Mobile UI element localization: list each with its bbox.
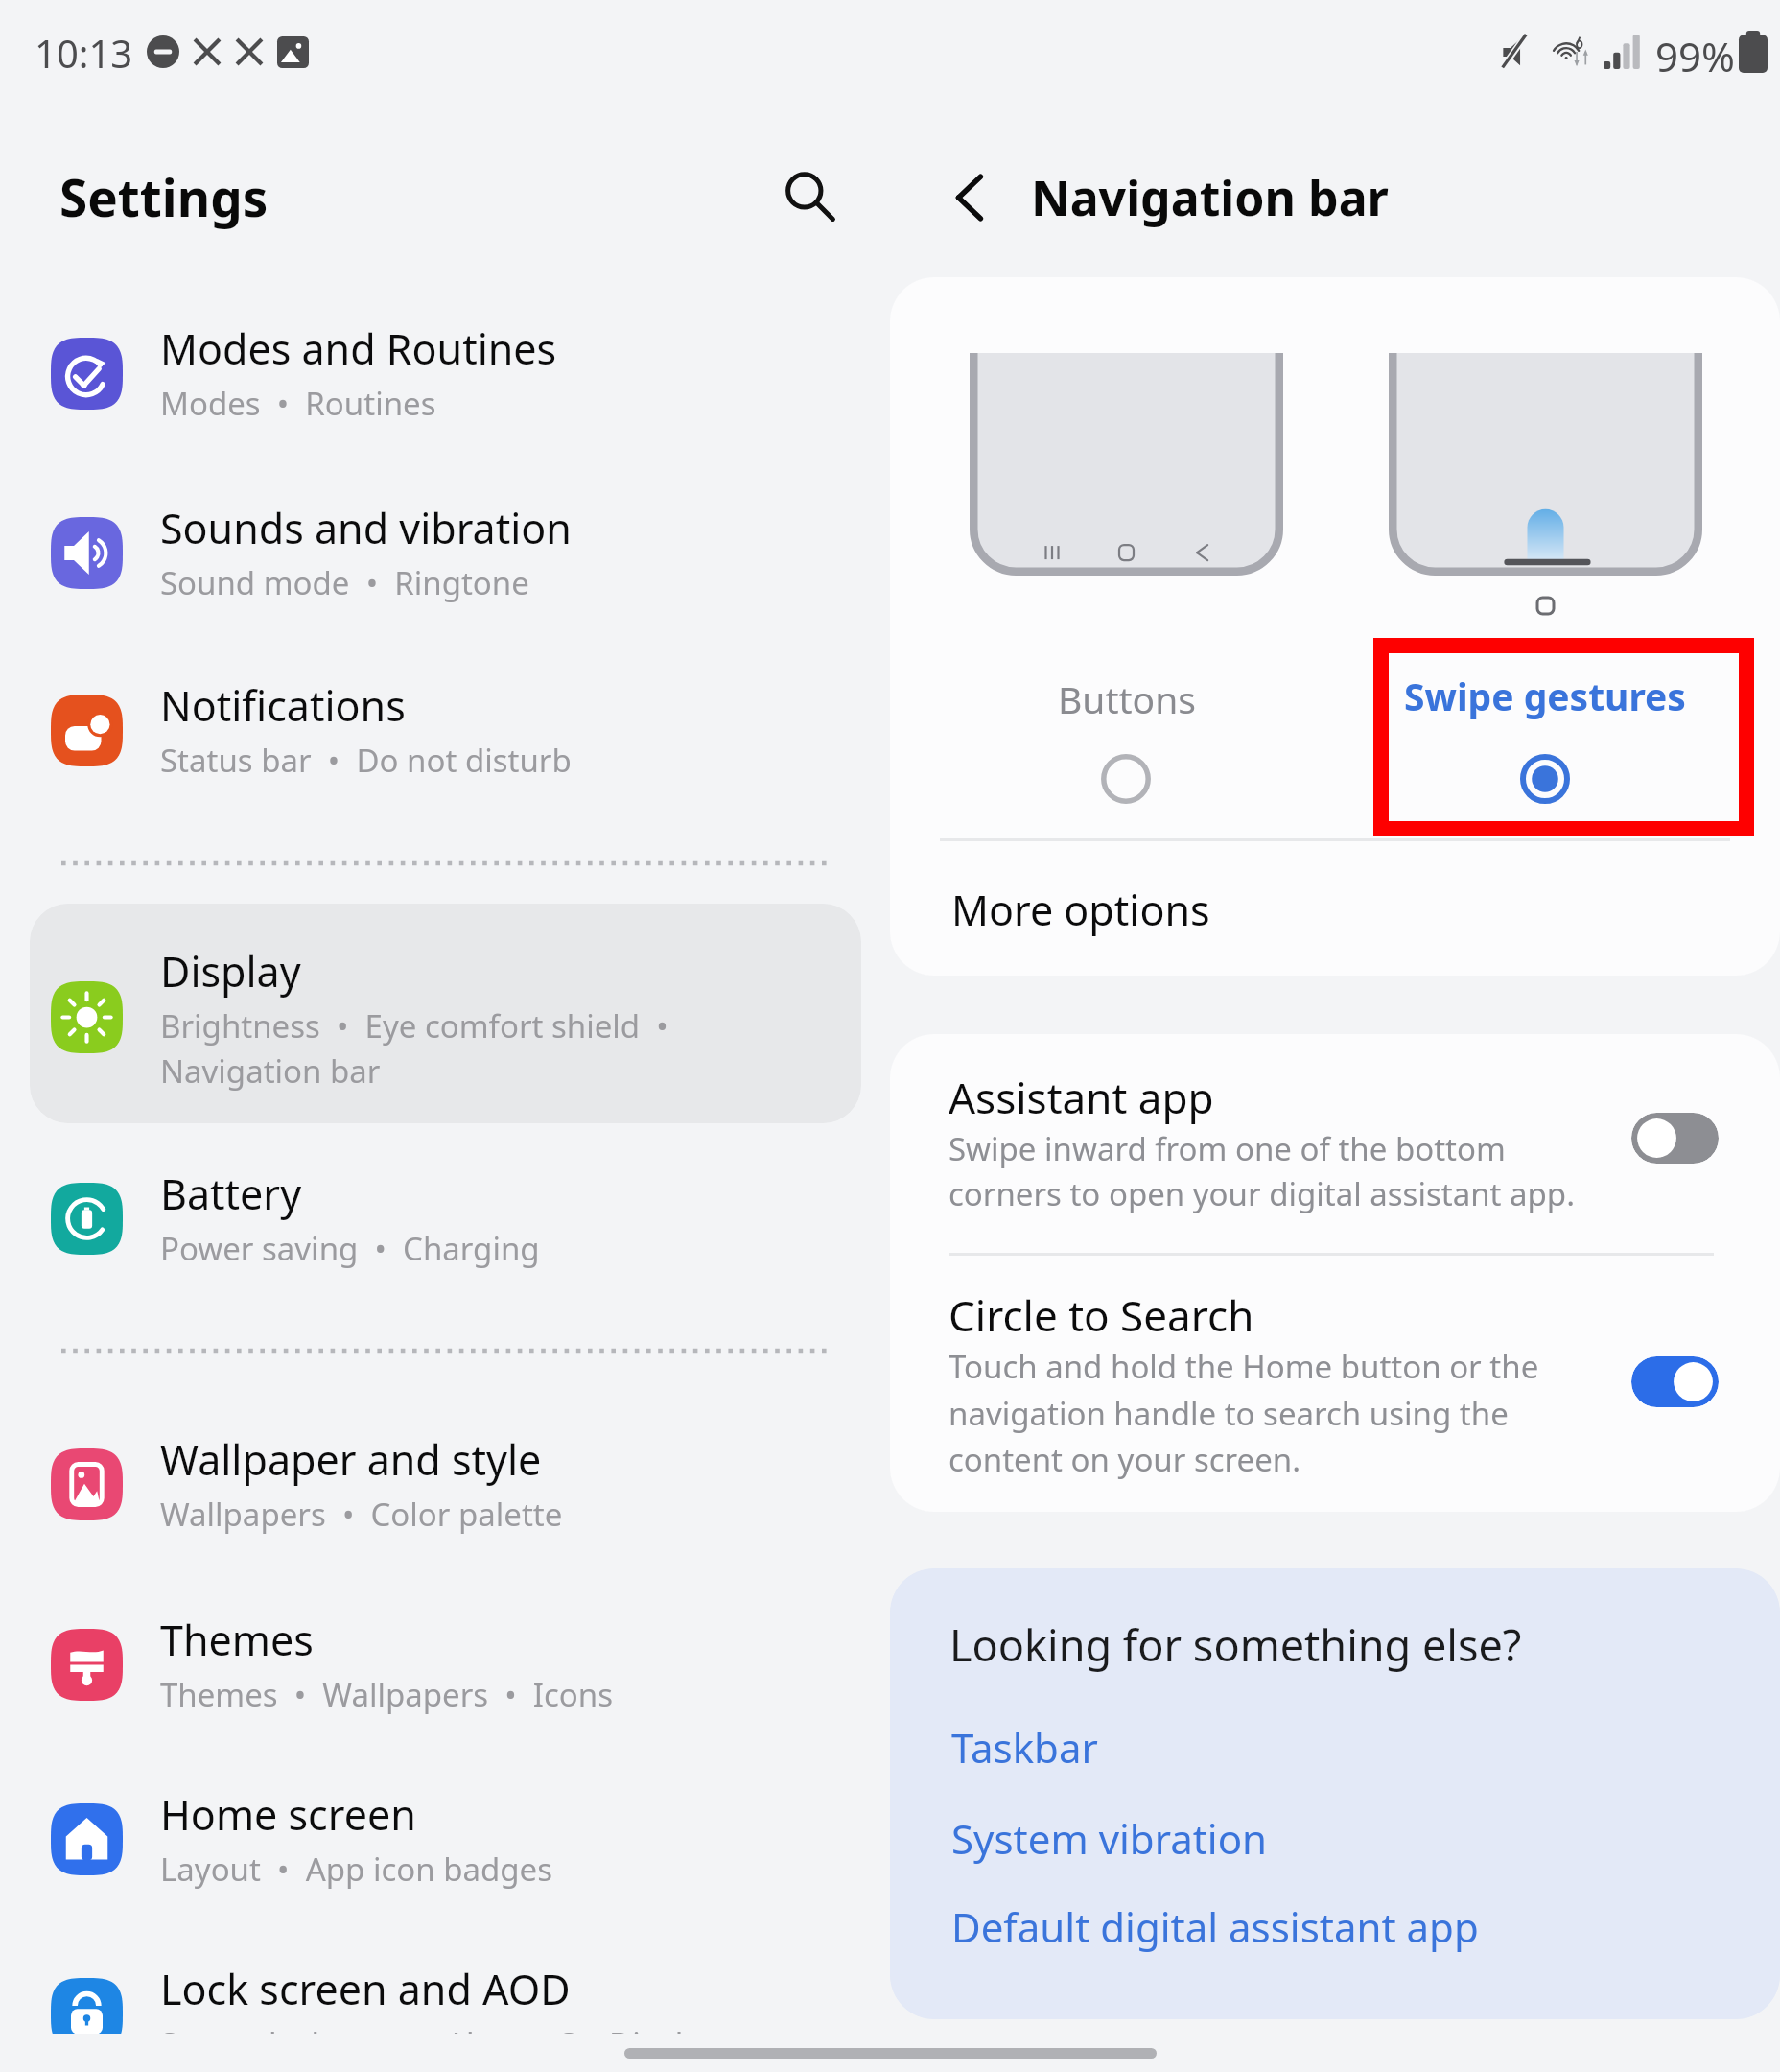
button[interactable]: Search bbox=[767, 153, 852, 238]
staticText: Settings bbox=[59, 162, 269, 231]
button[interactable] bbox=[890, 842, 1780, 976]
staticText: Notifications bbox=[160, 677, 406, 734]
staticText: 99% bbox=[1655, 29, 1735, 75]
staticText: Layout • App icon badges bbox=[160, 1848, 553, 1891]
button[interactable] bbox=[30, 644, 861, 792]
staticText: Swipe gestures bbox=[1404, 671, 1686, 721]
button[interactable] bbox=[890, 1257, 1780, 1512]
staticText: Brightness • Eye comfort shield • bbox=[160, 1004, 668, 1048]
staticText: Taskbar bbox=[951, 1720, 1098, 1775]
staticText: Wallpapers • Color palette bbox=[160, 1493, 563, 1536]
button[interactable]: Swipe gestures navigation, selected bbox=[1373, 345, 1754, 836]
button[interactable] bbox=[30, 1398, 861, 1546]
staticText: Screen lock type • Always On Display bbox=[160, 2022, 717, 2034]
button[interactable] bbox=[921, 1887, 1534, 1960]
staticText: Status bar • Do not disturb bbox=[160, 739, 572, 782]
staticText: Buttons bbox=[1058, 673, 1196, 724]
staticText: Navigation bar bbox=[160, 1049, 381, 1093]
button[interactable]: Toggle off bbox=[1631, 1113, 1719, 1164]
staticText: Sound mode • Ringtone bbox=[160, 561, 529, 604]
button[interactable] bbox=[30, 466, 861, 615]
staticText: Swipe inward from one of the bottom corn… bbox=[949, 1127, 1576, 1215]
staticText: Navigation bar bbox=[1031, 165, 1389, 230]
button[interactable]: Toggle on bbox=[1631, 1356, 1719, 1407]
button[interactable] bbox=[30, 909, 861, 1101]
staticText: System vibration bbox=[951, 1811, 1268, 1866]
staticText: Themes bbox=[160, 1612, 314, 1668]
button[interactable] bbox=[921, 1799, 1362, 1872]
button[interactable]: Back bbox=[928, 155, 1013, 240]
staticText: Default digital assistant app bbox=[951, 1899, 1479, 1954]
button[interactable] bbox=[30, 1753, 861, 1901]
staticText: Sounds and vibration bbox=[160, 500, 572, 556]
button[interactable]: Buttons navigation bbox=[959, 345, 1295, 836]
staticText: Touch and hold the Home button or the na… bbox=[949, 1345, 1539, 1480]
button[interactable] bbox=[30, 1132, 861, 1281]
staticText: Modes and Routines bbox=[160, 320, 557, 377]
button[interactable] bbox=[30, 1578, 861, 1727]
staticText: Display bbox=[160, 943, 301, 1000]
staticText: Power saving • Charging bbox=[160, 1227, 540, 1270]
staticText: Circle to Search bbox=[949, 1286, 1254, 1344]
button[interactable] bbox=[30, 287, 861, 436]
staticText: Assistant app bbox=[949, 1069, 1214, 1126]
button[interactable] bbox=[30, 1927, 861, 2034]
staticText: More options bbox=[951, 882, 1210, 938]
staticText: Wallpaper and style bbox=[160, 1431, 542, 1488]
staticText: Modes • Routines bbox=[160, 382, 436, 425]
button[interactable] bbox=[890, 1034, 1780, 1253]
staticText: Lock screen and AOD bbox=[160, 1961, 571, 2017]
staticText: Battery bbox=[160, 1165, 302, 1222]
staticText: 10:13 bbox=[35, 27, 133, 77]
staticText: Home screen bbox=[160, 1786, 416, 1843]
staticText: Looking for something else? bbox=[949, 1615, 1522, 1674]
staticText: Themes • Wallpapers • Icons bbox=[160, 1673, 613, 1716]
button[interactable] bbox=[921, 1707, 1247, 1780]
